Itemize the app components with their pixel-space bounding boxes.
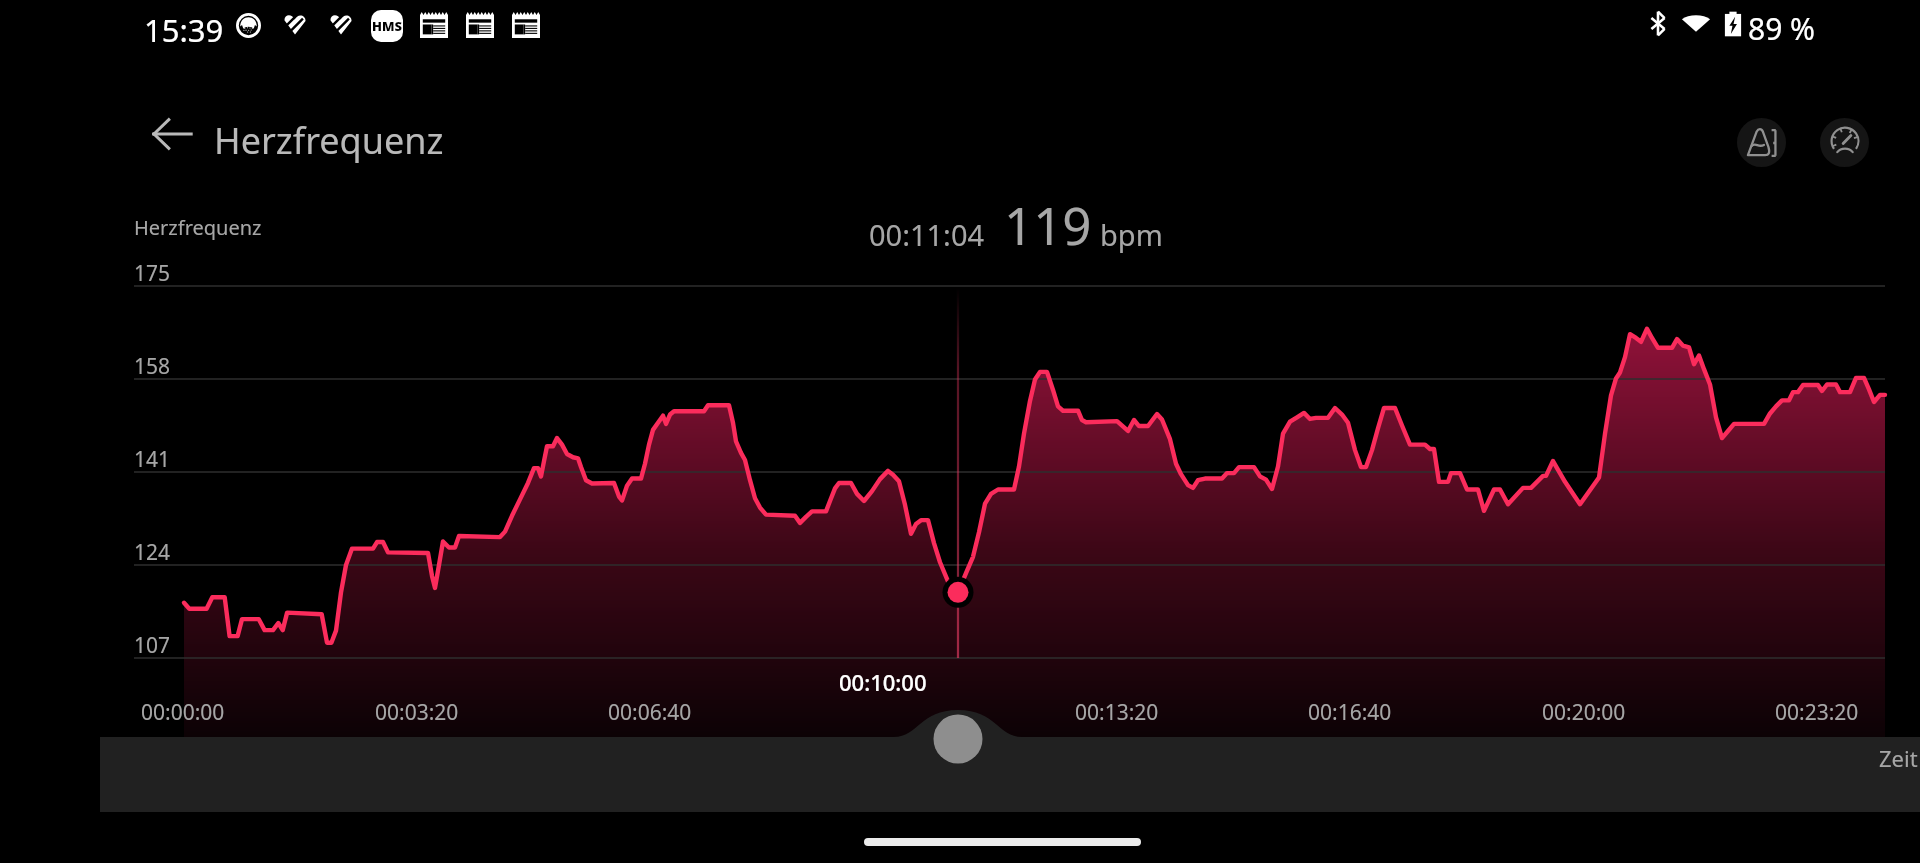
staticText: Zeit	[1879, 743, 1918, 773]
staticText: 00:23:20	[1775, 698, 1859, 727]
staticText: 00:13:20	[1075, 698, 1159, 727]
staticText: 15:39	[144, 9, 224, 51]
button[interactable]: Zeitpunkt wählen	[930, 711, 986, 767]
staticText: HMS	[372, 17, 403, 35]
staticText: 00:00:00	[141, 698, 225, 727]
staticText: 158	[134, 352, 171, 381]
staticText: 119	[1004, 190, 1092, 259]
staticText: 00:06:40	[608, 698, 692, 727]
button[interactable]: Tempo	[1820, 118, 1869, 167]
staticText: 00:03:20	[375, 698, 459, 727]
staticText: 89 %	[1748, 8, 1816, 49]
staticText: 124	[134, 538, 171, 567]
staticText: 175	[134, 259, 171, 288]
staticText: 107	[134, 631, 171, 660]
staticText: 00:16:40	[1308, 698, 1392, 727]
staticText: bpm	[1100, 215, 1163, 254]
button[interactable]: Diagramm	[1737, 118, 1786, 167]
staticText: Herzfrequenz	[134, 214, 262, 241]
staticText: 00:10:00	[839, 667, 927, 697]
staticText: 00:20:00	[1542, 698, 1626, 727]
staticText: 141	[134, 445, 171, 474]
staticText: Herzfrequenz	[214, 116, 444, 165]
staticText: 00:11:04	[869, 215, 985, 254]
button[interactable]: Zurück	[137, 99, 207, 169]
